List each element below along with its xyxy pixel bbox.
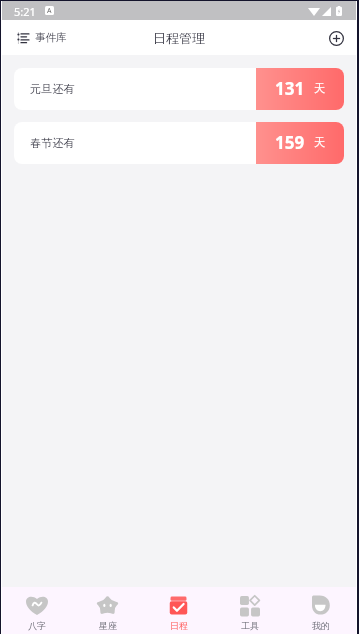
button[interactable]: 我的 [285, 587, 356, 634]
staticText: 日程管理 [153, 30, 205, 46]
button[interactable]: 星座 [72, 587, 143, 634]
button[interactable]: 八字 [2, 587, 72, 634]
staticText: 星座 [99, 620, 117, 631]
button[interactable]: 元旦还有 [14, 68, 344, 110]
staticText: 159 [275, 131, 305, 154]
staticText: 5:21 [14, 4, 36, 19]
button[interactable]: 春节还有 [14, 122, 344, 164]
staticText: 元旦还有 [30, 82, 256, 96]
staticText: 八字 [28, 620, 46, 631]
staticText: 工具 [241, 620, 259, 631]
staticText: 事件库 [35, 31, 67, 44]
button[interactable]: 事件库 [2, 25, 77, 50]
staticText: A [47, 6, 52, 15]
staticText: 天 [314, 81, 326, 95]
button[interactable]: Add [322, 24, 350, 52]
staticText: 131 [275, 77, 305, 100]
staticText: 日程 [170, 620, 188, 631]
staticText: 春节还有 [30, 136, 256, 150]
staticText: 天 [314, 135, 326, 149]
button[interactable]: 工具 [214, 587, 285, 634]
staticText: 我的 [312, 620, 330, 631]
button[interactable]: 日程 [143, 587, 214, 634]
